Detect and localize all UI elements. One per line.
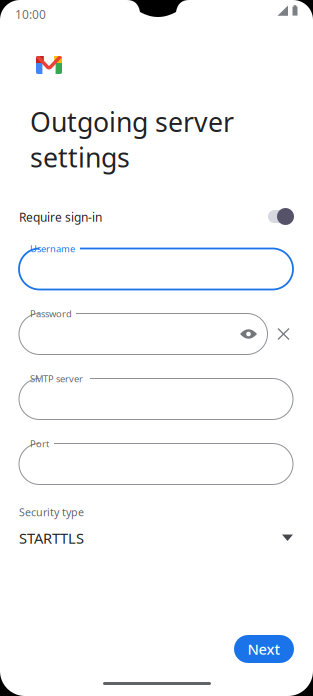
staticText: Port bbox=[30, 437, 49, 450]
staticText: Username bbox=[30, 242, 75, 255]
staticText: Security type bbox=[19, 505, 84, 519]
staticText: Next bbox=[247, 639, 280, 659]
button[interactable]: Clear bbox=[278, 328, 289, 339]
staticText: STARTTLS bbox=[19, 528, 84, 548]
button[interactable]: Show password bbox=[240, 328, 257, 340]
button[interactable]: Require sign-in bbox=[19, 200, 295, 234]
staticText: Password bbox=[30, 307, 72, 320]
staticText: SMTP server bbox=[30, 372, 83, 385]
button[interactable]: Next bbox=[234, 635, 294, 663]
staticText: 10:00 bbox=[15, 6, 46, 22]
staticText: Require sign-in bbox=[19, 209, 102, 225]
staticText: Outgoing server settings bbox=[30, 104, 234, 175]
button[interactable]: STARTTLS bbox=[19, 527, 293, 549]
